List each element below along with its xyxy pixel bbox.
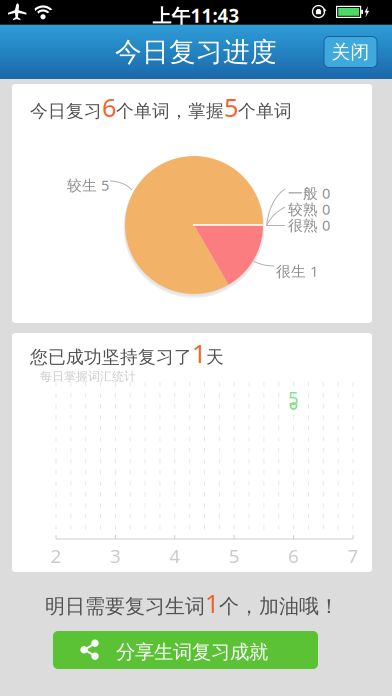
staticText: 很熟 0 <box>288 215 330 235</box>
staticText: 关闭 <box>331 40 369 64</box>
staticText: 天 <box>206 346 224 368</box>
staticText: 个单词，掌握 <box>116 100 224 122</box>
staticText: 2 <box>50 543 61 568</box>
staticText: 很生 1 <box>276 261 318 281</box>
staticText: 3 <box>110 543 121 568</box>
staticText: 6 <box>102 90 116 124</box>
staticText: 较熟 0 <box>288 199 330 219</box>
staticText: 5 <box>288 385 299 410</box>
staticText: 1 <box>192 336 206 370</box>
staticText: 个单词 <box>238 100 292 122</box>
staticText: 6 <box>288 543 299 568</box>
button[interactable]: 关闭 <box>324 36 377 67</box>
staticText: 分享生词复习成就 <box>116 640 268 664</box>
staticText: 个，加油哦！ <box>219 594 339 619</box>
staticText: 较生 5 <box>67 175 109 195</box>
staticText: 1 <box>205 586 219 620</box>
staticText: 7 <box>347 543 358 568</box>
staticText: 今日复习 <box>30 100 102 122</box>
staticText: 5 <box>224 90 238 124</box>
staticText: 一般 0 <box>288 183 330 203</box>
staticText: 今日复习进度 <box>115 35 277 69</box>
button[interactable]: 分享生词复习成就 <box>53 631 318 669</box>
staticText: 您已成功坚持复习了 <box>30 346 192 368</box>
staticText: 每日掌握词汇统计 <box>40 369 136 384</box>
staticText: 上午11:43 <box>152 3 239 28</box>
staticText: 明日需要复习生词 <box>45 594 205 619</box>
staticText: 4 <box>169 543 180 568</box>
staticText: 5 <box>229 543 240 568</box>
